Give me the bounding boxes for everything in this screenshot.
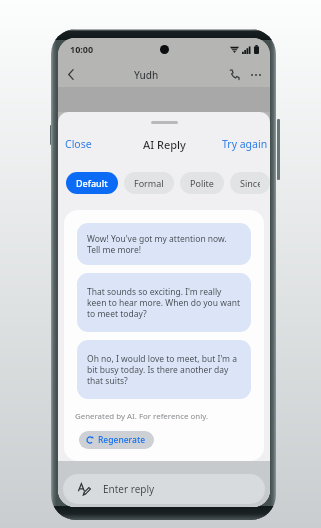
button[interactable]: Regenerate xyxy=(79,431,154,449)
button[interactable]: Oh no, I would love to meet, but I'm a b… xyxy=(77,340,251,399)
staticText: Regenerate xyxy=(98,434,146,446)
button[interactable]: Sincere xyxy=(230,172,270,194)
button[interactable]: Default xyxy=(66,172,118,194)
staticText: AI Reply xyxy=(143,137,186,152)
staticText: Generated by AI. For reference only. xyxy=(75,411,209,422)
staticText: Formal xyxy=(134,177,164,189)
staticText: Try again xyxy=(222,137,268,151)
staticText: Sincere xyxy=(240,177,260,189)
button[interactable]: Formal xyxy=(124,172,174,194)
button[interactable]: Close xyxy=(58,135,96,153)
staticText: Enter reply xyxy=(103,482,155,496)
staticText: Polite xyxy=(190,177,214,189)
button[interactable]: Back xyxy=(58,62,84,87)
button[interactable]: Polite xyxy=(180,172,224,194)
button[interactable]: Wow! You've got my attention now. Tell m… xyxy=(77,223,251,265)
staticText: Default xyxy=(76,177,108,189)
button[interactable]: That sounds so exciting. I'm really keen… xyxy=(77,273,251,332)
button[interactable]: Call xyxy=(221,62,245,87)
staticText: That sounds so exciting. I'm really keen… xyxy=(87,286,241,319)
button[interactable]: Enter reply xyxy=(63,474,265,504)
staticText: 10:00 xyxy=(70,43,94,55)
button[interactable]: Try again xyxy=(218,135,270,153)
staticText: Oh no, I would love to meet, but I'm a b… xyxy=(87,353,241,386)
staticText: Yudh xyxy=(134,68,159,82)
button[interactable]: More options xyxy=(245,62,267,87)
staticText: Close xyxy=(65,137,92,151)
staticText: Wow! You've got my attention now. Tell m… xyxy=(87,233,241,255)
